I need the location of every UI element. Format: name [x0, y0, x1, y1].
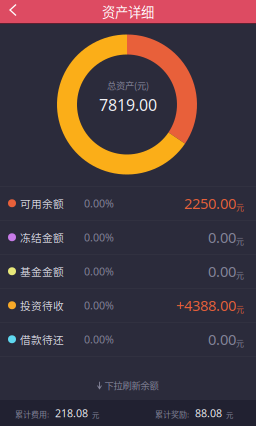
staticText: 0.00% — [84, 196, 114, 210]
staticText: 元 — [236, 269, 244, 281]
button[interactable]: 基金金额 — [0, 254, 256, 288]
button[interactable]: 返回 — [3, 0, 23, 22]
staticText: 基金金额 — [20, 263, 64, 279]
button[interactable]: 借款待还 — [0, 322, 256, 356]
staticText: 下拉刷新余额 — [104, 378, 158, 392]
staticText: 可用余额 — [20, 195, 64, 211]
button[interactable]: 可用余额 — [0, 186, 256, 220]
staticText: 元 — [92, 409, 99, 420]
staticText: 资产详细 — [102, 2, 154, 21]
staticText: 累计费用: — [15, 408, 49, 420]
staticText: 2250.00 — [184, 193, 236, 213]
staticText: 88.08 — [195, 406, 222, 420]
staticText: 0.00 — [208, 329, 236, 349]
staticText: 0.00 — [208, 227, 236, 247]
staticText: 累计奖励: — [155, 408, 189, 420]
staticText: 元 — [236, 337, 244, 349]
staticText: 218.08 — [55, 406, 88, 420]
staticText: 冻结金额 — [20, 229, 64, 245]
staticText: 0.00% — [84, 230, 114, 244]
button[interactable]: 冻结金额 — [0, 220, 256, 254]
staticText: +4388.00 — [176, 295, 236, 315]
staticText: 0.00 — [208, 261, 236, 281]
staticText: 0.00% — [84, 264, 114, 278]
staticText: 元 — [226, 409, 233, 420]
staticText: 元 — [236, 303, 244, 315]
staticText: 7819.00 — [99, 94, 157, 116]
staticText: 0.00% — [84, 298, 114, 312]
staticText: 0.00% — [84, 332, 114, 346]
staticText: 投资待收 — [20, 297, 64, 313]
staticText: 借款待还 — [20, 331, 64, 347]
button[interactable]: 投资待收 — [0, 288, 256, 322]
staticText: 总资产(元) — [107, 78, 149, 92]
staticText: 元 — [236, 201, 244, 213]
staticText: 元 — [236, 235, 244, 247]
